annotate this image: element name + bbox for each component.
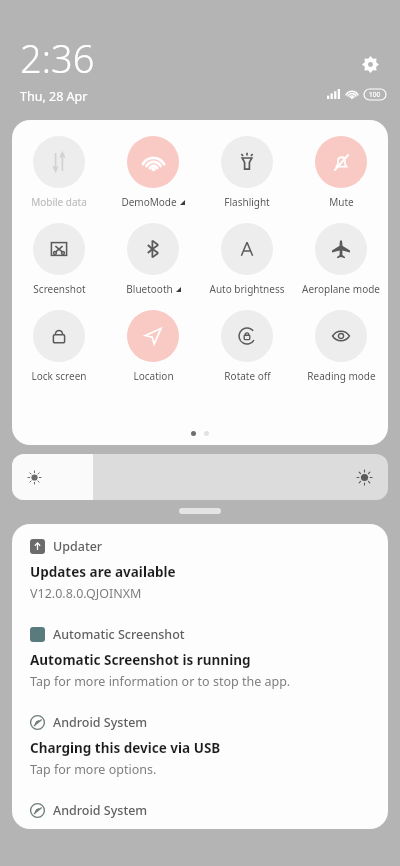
staticText: Reading mode xyxy=(307,369,376,383)
staticText: Thu, 28 Apr xyxy=(20,88,88,105)
staticText: Lock screen xyxy=(31,369,87,383)
button[interactable]: Lock screen xyxy=(12,308,106,385)
button[interactable]: Location xyxy=(106,308,200,385)
button[interactable]: Screenshot xyxy=(12,221,106,298)
staticText: Android System xyxy=(53,802,148,819)
staticText: Tap for more options. xyxy=(30,761,157,778)
staticText: 100 xyxy=(369,90,381,99)
staticText: Updates are available xyxy=(30,563,176,581)
button[interactable]: Rotate off xyxy=(200,308,294,385)
button[interactable]: Auto brightness xyxy=(200,221,294,298)
staticText: Updater xyxy=(53,538,103,555)
button[interactable]: Android System xyxy=(12,700,388,788)
button[interactable]: Aeroplane mode xyxy=(294,221,388,298)
staticText: Location xyxy=(133,369,174,383)
staticText: Android System xyxy=(53,714,148,731)
staticText: Mute xyxy=(329,195,354,209)
staticText: Mobile data xyxy=(31,195,87,209)
staticText: Auto brightness xyxy=(209,282,285,296)
button[interactable]: Updater xyxy=(12,524,388,612)
button[interactable]: DemoMode xyxy=(106,134,200,211)
button[interactable]: Mobile data xyxy=(12,134,106,211)
staticText: Automatic Screenshot is running xyxy=(30,651,251,669)
button[interactable]: Bluetooth xyxy=(106,221,200,298)
staticText: V12.0.8.0.QJOINXM xyxy=(30,585,142,602)
button[interactable]: Reading mode xyxy=(294,308,388,385)
staticText: Flashlight xyxy=(224,195,270,209)
staticText: Aeroplane mode xyxy=(302,282,380,296)
button[interactable]: Settings xyxy=(354,48,386,80)
staticText: Screenshot xyxy=(33,282,86,296)
staticText: Bluetooth xyxy=(126,282,173,296)
button[interactable]: Automatic Screenshot xyxy=(12,612,388,700)
staticText: 2:36 xyxy=(20,32,95,84)
button[interactable]: Expand xyxy=(179,508,221,514)
button[interactable]: Android System xyxy=(12,788,388,829)
staticText: Charging this device via USB xyxy=(30,739,221,757)
button[interactable]: Brightness xyxy=(12,454,388,500)
staticText: Automatic Screenshot xyxy=(53,626,185,643)
staticText: Rotate off xyxy=(224,369,271,383)
staticText: DemoMode xyxy=(121,195,177,209)
button[interactable]: Flashlight xyxy=(200,134,294,211)
staticText: Tap for more information or to stop the … xyxy=(30,673,291,690)
button[interactable]: Mute xyxy=(294,134,388,211)
